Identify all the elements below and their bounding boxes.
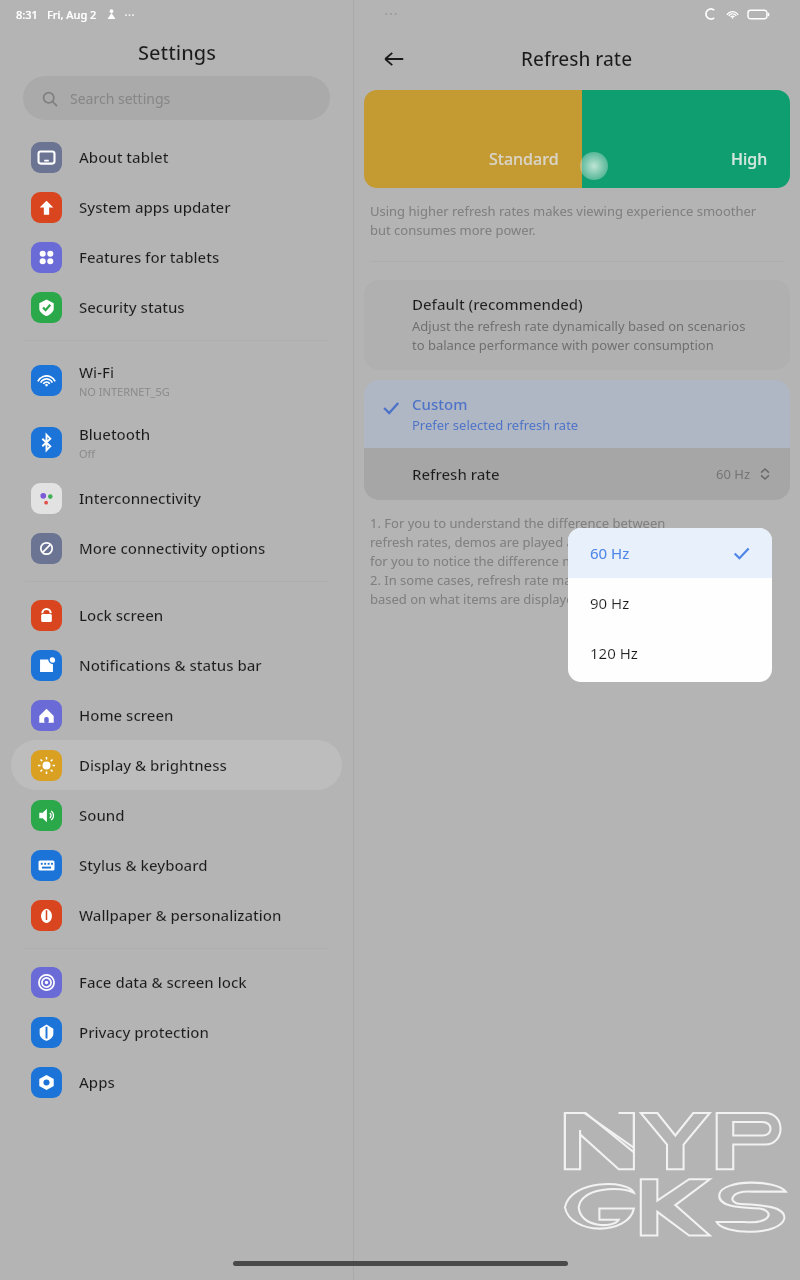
button[interactable]: Lock screen <box>11 590 342 640</box>
staticText: Wallpaper & personalization <box>79 905 282 925</box>
button[interactable]: Standard <box>364 90 790 188</box>
staticText: 1. For you to understand the difference … <box>370 514 666 608</box>
staticText: Features for tablets <box>79 247 220 267</box>
staticText: 60 Hz <box>590 543 630 563</box>
button[interactable]: Wallpaper & personalization <box>11 890 342 940</box>
staticText: Default (recommended) <box>412 294 583 314</box>
staticText: Stylus & keyboard <box>79 855 208 875</box>
staticText: Refresh rate <box>412 464 500 484</box>
staticText: Display & brightness <box>79 755 227 775</box>
button[interactable]: 120 Hz <box>568 628 772 678</box>
staticText: Refresh rate <box>521 46 633 72</box>
staticText: Prefer selected refresh rate <box>412 416 579 434</box>
button[interactable]: Sound <box>11 790 342 840</box>
staticText: 120 Hz <box>590 643 638 663</box>
staticText: NO INTERNET_5G <box>79 384 170 399</box>
staticText: Standard <box>489 148 559 170</box>
staticText: Face data & screen lock <box>79 972 247 992</box>
staticText: Wi-Fi <box>79 362 114 382</box>
staticText: Bluetooth <box>79 424 151 444</box>
button[interactable]: Stylus & keyboard <box>11 840 342 890</box>
button[interactable]: Interconnectivity <box>11 473 342 523</box>
button[interactable]: Security status <box>11 282 342 332</box>
staticText: System apps updater <box>79 197 231 217</box>
button[interactable]: Wi-Fi <box>11 349 342 411</box>
button[interactable]: Face data & screen lock <box>11 957 342 1007</box>
button[interactable]: 60 Hz <box>568 528 772 578</box>
staticText: Sound <box>79 805 125 825</box>
staticText: 8:31 <box>16 7 38 22</box>
button[interactable]: Bluetooth <box>11 411 342 473</box>
button[interactable]: Refresh rate <box>364 448 790 500</box>
button[interactable]: Privacy protection <box>11 1007 342 1057</box>
staticText: 60 Hz <box>716 465 750 483</box>
staticText: Privacy protection <box>79 1022 209 1042</box>
staticText: Using higher refresh rates makes viewing… <box>370 202 757 239</box>
button[interactable]: Default (recommended) <box>364 280 790 370</box>
button[interactable]: Search settings <box>23 76 330 120</box>
staticText: 90 Hz <box>590 593 630 613</box>
button[interactable]: About tablet <box>11 132 342 182</box>
staticText: Lock screen <box>79 605 164 625</box>
button[interactable]: System apps updater <box>11 182 342 232</box>
staticText: Fri, Aug 2 <box>47 7 97 22</box>
button[interactable]: Back <box>370 35 418 83</box>
staticText: About tablet <box>79 147 169 167</box>
staticText: Security status <box>79 297 185 317</box>
staticText: More connectivity options <box>79 538 266 558</box>
staticText: Apps <box>79 1072 115 1092</box>
staticText: Adjust the refresh rate dynamically base… <box>412 317 746 354</box>
button[interactable]: Features for tablets <box>11 232 342 282</box>
staticText: Home screen <box>79 705 174 725</box>
button[interactable]: Home screen <box>11 690 342 740</box>
staticText: Settings <box>138 39 216 66</box>
staticText: High <box>731 148 768 170</box>
button[interactable]: 90 Hz <box>568 578 772 628</box>
staticText: Custom <box>412 394 468 414</box>
button[interactable]: Display & brightness <box>11 740 342 790</box>
staticText: Interconnectivity <box>79 488 201 508</box>
button[interactable]: Custom <box>364 380 790 448</box>
button[interactable]: Notifications & status bar <box>11 640 342 690</box>
staticText: Search settings <box>70 89 171 108</box>
button[interactable]: More connectivity options <box>11 523 342 573</box>
button[interactable]: Apps <box>11 1057 342 1107</box>
staticText: Notifications & status bar <box>79 655 262 675</box>
staticText: Off <box>79 446 96 461</box>
